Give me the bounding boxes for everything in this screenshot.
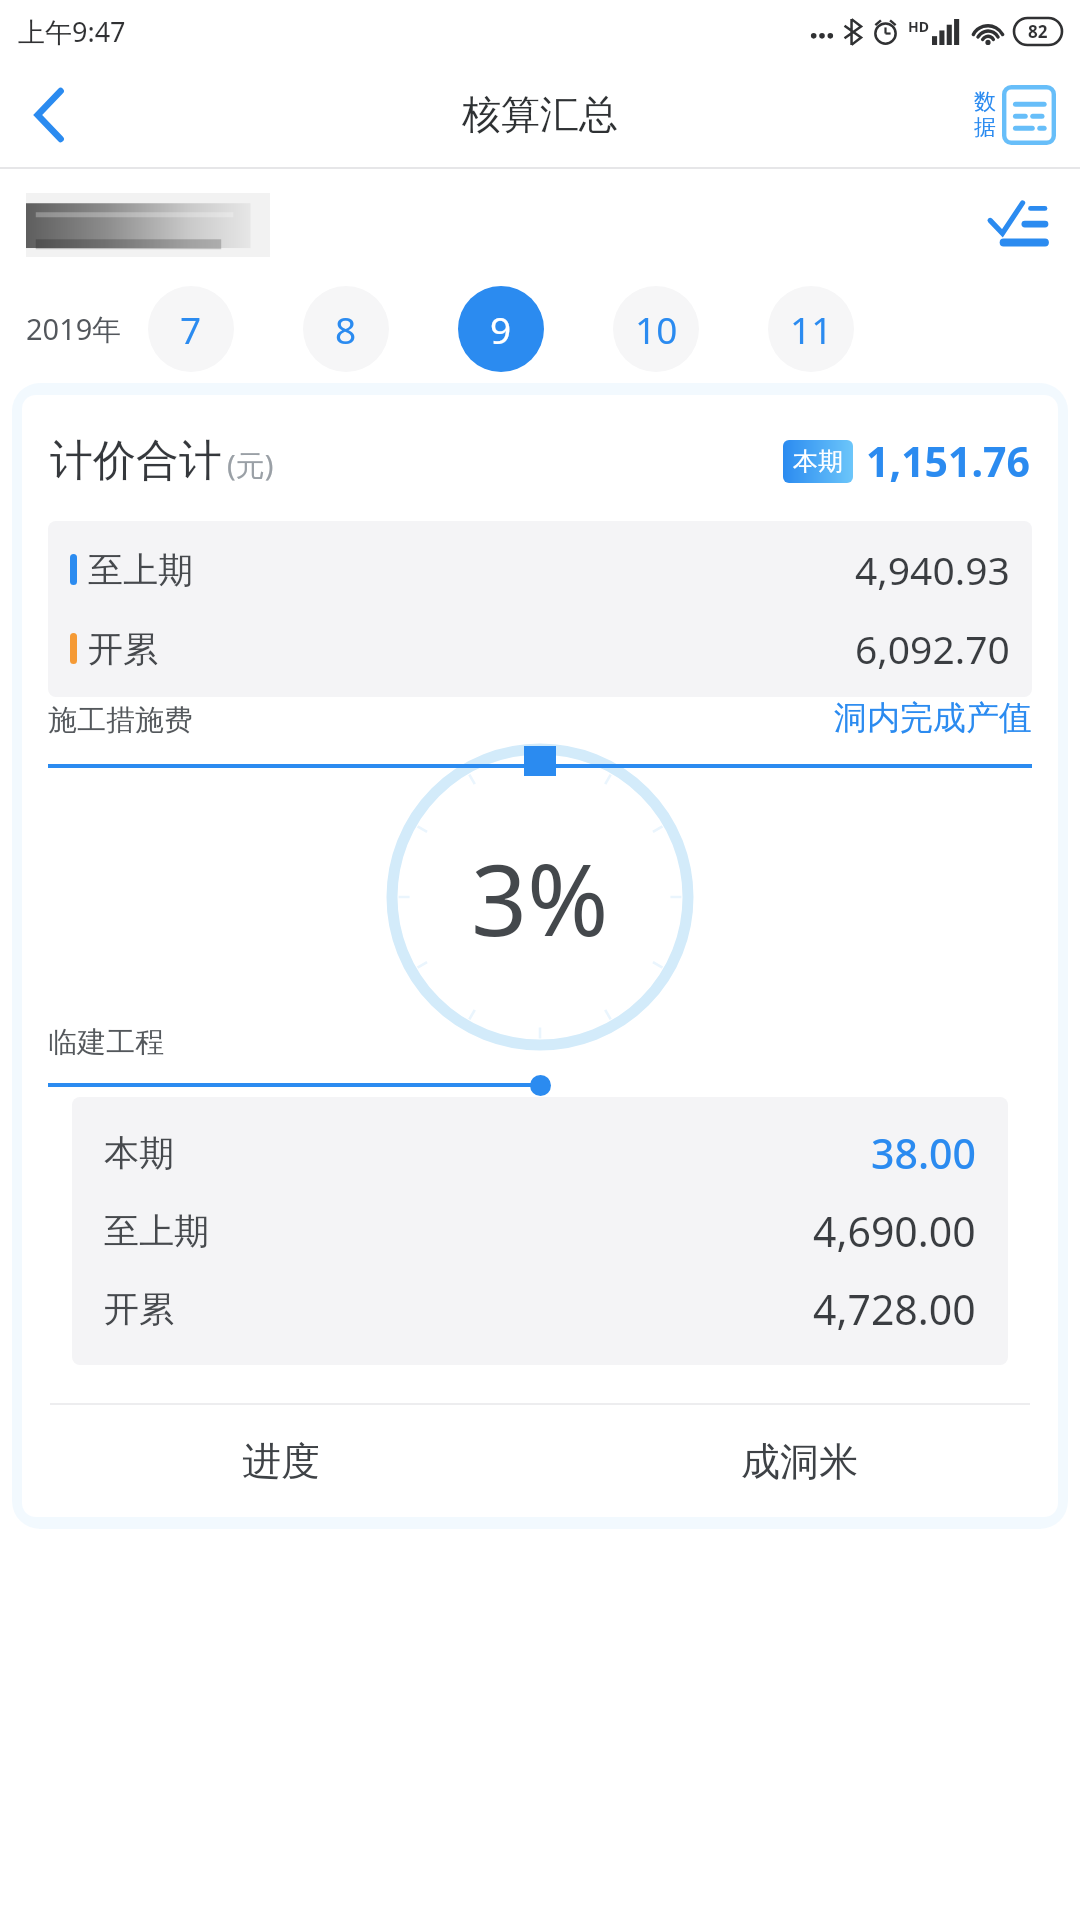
- staticText: 临建工程: [48, 1024, 164, 1061]
- staticText: 数 据: [974, 88, 996, 142]
- staticText: 1,151.76: [866, 433, 1030, 489]
- staticText: 11: [790, 304, 833, 354]
- button[interactable]: Select: [978, 186, 1056, 264]
- staticText: 成洞米: [741, 1437, 858, 1486]
- staticText: HD: [908, 17, 929, 36]
- button[interactable]: 7: [148, 286, 234, 372]
- staticText: 82: [1028, 20, 1048, 43]
- staticText: 6,092.70: [855, 622, 1010, 675]
- staticText: 上午9:47: [18, 13, 126, 50]
- button[interactable]: Data: [970, 81, 1060, 149]
- button[interactable]: Back: [0, 65, 100, 165]
- staticText: 3%: [471, 831, 609, 964]
- staticText: 至上期: [88, 548, 193, 592]
- button[interactable]: 成洞米: [540, 1405, 1058, 1517]
- button[interactable]: 10: [613, 286, 699, 372]
- button[interactable]: [26, 193, 270, 257]
- staticText: 4,690.00: [813, 1203, 976, 1259]
- staticText: 10: [635, 304, 678, 354]
- staticText: 开累: [104, 1287, 174, 1331]
- staticText: 4,728.00: [813, 1281, 976, 1337]
- staticText: 至上期: [104, 1209, 209, 1253]
- staticText: 7: [180, 304, 202, 354]
- button[interactable]: 11: [768, 286, 854, 372]
- staticText: 9: [490, 304, 512, 354]
- staticText: 4,940.93: [855, 543, 1010, 596]
- staticText: (元): [227, 445, 274, 485]
- button[interactable]: 9: [458, 286, 544, 372]
- staticText: 本期: [104, 1131, 174, 1175]
- staticText: 本期: [793, 446, 843, 477]
- staticText: 8: [335, 304, 357, 354]
- staticText: 2019年: [26, 309, 122, 349]
- staticText: 38.00: [871, 1125, 976, 1181]
- staticText: 核算汇总: [462, 90, 618, 139]
- staticText: 计价合计: [50, 434, 222, 488]
- staticText: 开累: [88, 627, 158, 671]
- button[interactable]: 洞内完成产值: [834, 697, 1032, 739]
- staticText: 施工措施费: [48, 702, 193, 739]
- button[interactable]: 8: [303, 286, 389, 372]
- button[interactable]: 进度: [22, 1405, 540, 1517]
- staticText: 进度: [242, 1437, 320, 1486]
- staticText: 洞内完成产值: [834, 697, 1032, 739]
